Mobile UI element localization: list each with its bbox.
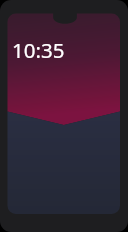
staticText: 10:35 [12, 36, 65, 64]
button[interactable]: 10:35 [0, 0, 128, 232]
